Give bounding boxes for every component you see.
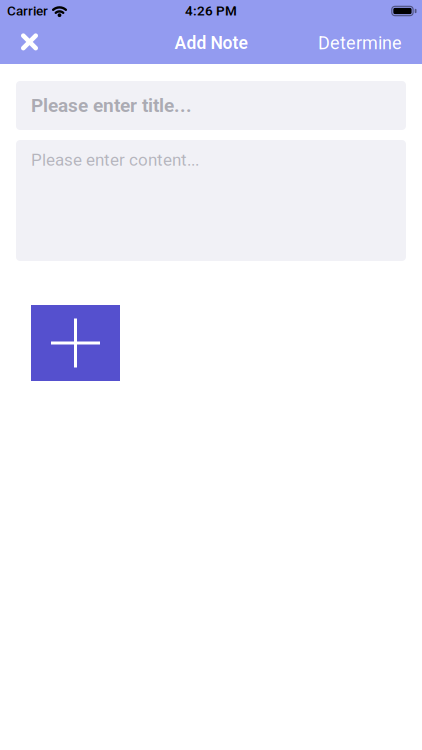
staticText: Carrier xyxy=(7,3,48,19)
staticText: Please enter title... xyxy=(31,94,192,117)
button[interactable]: Close xyxy=(0,22,50,64)
staticText: Add Note xyxy=(174,33,247,53)
staticText: 4:26 PM xyxy=(185,3,237,19)
button[interactable]: Please enter title... xyxy=(16,81,406,130)
button[interactable]: Add xyxy=(31,305,120,381)
staticText: Determine xyxy=(318,32,402,54)
button[interactable]: Please enter content... xyxy=(16,140,406,261)
staticText: Please enter content... xyxy=(31,150,199,170)
button[interactable]: Determine xyxy=(318,22,422,64)
